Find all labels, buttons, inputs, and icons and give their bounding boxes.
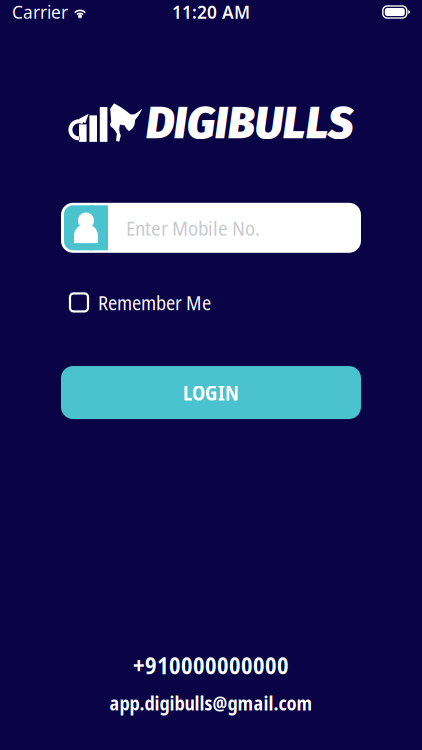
staticText: DIGIBULLS	[146, 97, 353, 150]
button[interactable]: Profile	[61, 205, 108, 250]
button[interactable]: Remember Me	[70, 289, 211, 316]
staticText: Enter Mobile No.	[126, 214, 260, 242]
staticText: LOGIN	[183, 378, 239, 407]
staticText: app.digibulls@gmail.com	[109, 690, 312, 716]
staticText: Remember Me	[98, 289, 211, 316]
staticText: +910000000000	[133, 649, 289, 681]
staticText: 11:20 AM	[172, 0, 250, 23]
button[interactable]: LOGIN	[61, 366, 361, 419]
staticText: Carrier	[12, 0, 68, 23]
